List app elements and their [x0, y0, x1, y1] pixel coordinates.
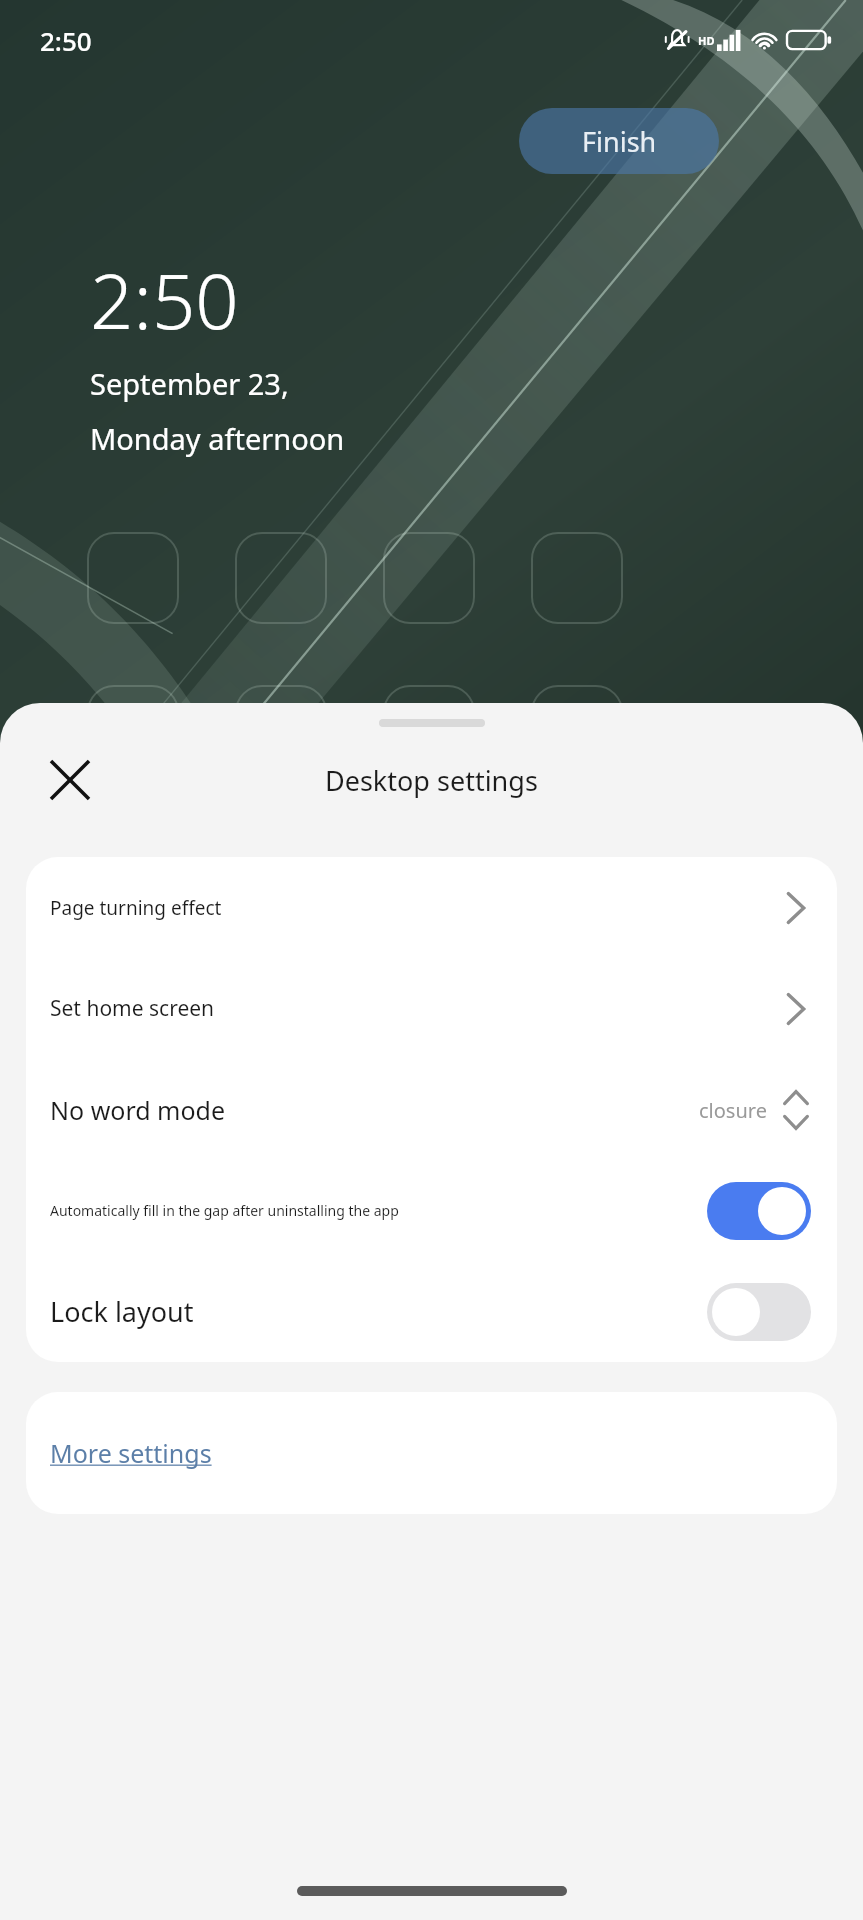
staticText: September 23, [90, 364, 289, 403]
staticText: Page turning effect [50, 895, 222, 921]
staticText: HD [698, 33, 715, 48]
button[interactable]: More settings [26, 1392, 837, 1514]
staticText: Finish [582, 123, 657, 160]
staticText: Automatically fill in the gap after unin… [50, 1201, 399, 1220]
staticText: 2:50 [90, 248, 239, 352]
button[interactable]: No word mode [26, 1059, 837, 1160]
button[interactable]: Lock layout [26, 1261, 837, 1362]
staticText: Lock layout [50, 1293, 194, 1330]
button[interactable]: Automatically fill in the gap after unin… [26, 1160, 837, 1261]
staticText: More settings [50, 1436, 212, 1470]
button[interactable]: Finish [519, 108, 719, 174]
staticText: Monday afternoon [90, 419, 345, 458]
staticText: Set home screen [50, 994, 215, 1023]
staticText: closure [699, 1097, 767, 1124]
button[interactable]: Close [34, 744, 106, 816]
button[interactable]: Off [707, 1283, 811, 1341]
staticText: No word mode [50, 1093, 226, 1127]
button[interactable]: On [707, 1182, 811, 1240]
button[interactable]: Page turning effect [26, 857, 837, 958]
staticText: Desktop settings [325, 762, 538, 799]
staticText: 2:50 [40, 23, 92, 58]
button[interactable]: Set home screen [26, 958, 837, 1059]
